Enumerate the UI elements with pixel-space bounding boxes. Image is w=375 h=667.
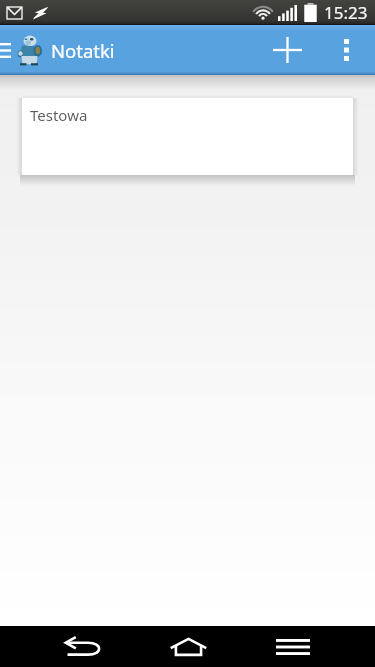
staticText: Testowa [30,105,88,125]
button[interactable]: More options [334,25,358,75]
staticText: Notatki [51,38,115,63]
button[interactable]: Add note [263,26,311,74]
button[interactable]: Open navigation drawer [0,25,16,75]
button[interactable]: Testowa [22,98,353,175]
staticText: 15:23 [324,1,368,24]
button[interactable]: Home [162,626,214,667]
button[interactable]: Recent apps [267,626,319,667]
button[interactable]: Back [57,626,109,667]
